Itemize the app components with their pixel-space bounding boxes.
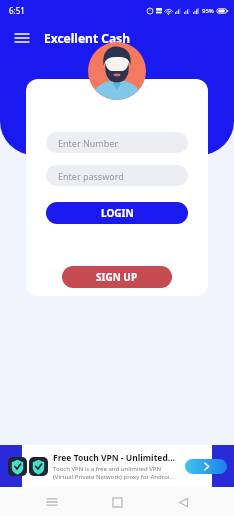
staticText: Touch VPN is a free and unlimited VPN bbox=[53, 465, 161, 473]
button[interactable]: Menu bbox=[9, 25, 35, 51]
staticText: Enter Number bbox=[58, 137, 119, 149]
button[interactable]: SIGN UP bbox=[62, 266, 172, 288]
staticText: 6:51 bbox=[9, 5, 25, 16]
button[interactable]: Home bbox=[103, 488, 131, 516]
button[interactable]: Free Touch VPN - Unlimited... bbox=[0, 445, 234, 487]
button[interactable]: Recents bbox=[38, 488, 66, 516]
staticText: Enter password bbox=[58, 170, 124, 182]
button[interactable]: Install bbox=[185, 459, 227, 474]
staticText: 95% bbox=[202, 7, 214, 15]
button[interactable]: Enter password bbox=[46, 165, 188, 186]
staticText: LOGIN bbox=[101, 206, 134, 220]
button[interactable]: Back bbox=[169, 488, 197, 516]
staticText: (Virtual Private Network) proxy for Andr… bbox=[53, 473, 175, 481]
staticText: Excellent Cash bbox=[44, 30, 130, 46]
staticText: Free Touch VPN - Unlimited... bbox=[53, 452, 175, 464]
staticText: SIGN UP bbox=[96, 270, 138, 284]
button[interactable]: Enter Number bbox=[46, 132, 188, 153]
button[interactable]: LOGIN bbox=[46, 202, 188, 224]
